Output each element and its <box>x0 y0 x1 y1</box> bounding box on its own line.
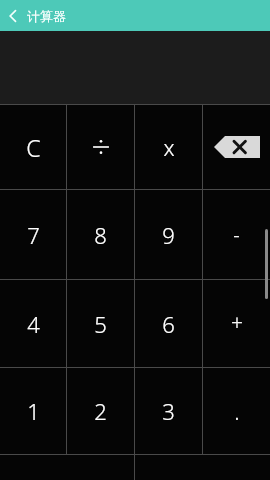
button[interactable]: 9 <box>135 190 202 279</box>
button[interactable]: 2 <box>67 368 134 454</box>
button[interactable]: C <box>0 105 66 189</box>
button[interactable]: x <box>135 105 202 189</box>
staticText: 2 <box>94 396 107 426</box>
staticText: 5 <box>94 309 107 339</box>
other: Back <box>6 9 20 23</box>
staticText: 计算器 <box>27 8 66 24</box>
button[interactable]: 7 <box>0 190 66 279</box>
staticText: 7 <box>27 220 40 250</box>
button[interactable]: Back <box>0 0 76 31</box>
button[interactable]: - <box>203 190 270 279</box>
button[interactable]: 8 <box>67 190 134 279</box>
staticText: . <box>234 396 240 426</box>
button[interactable]: 4 <box>0 280 66 367</box>
button[interactable]: 5 <box>67 280 134 367</box>
staticText: C <box>26 132 41 163</box>
staticText: 9 <box>162 220 175 250</box>
other: Backspace <box>214 136 260 158</box>
staticText: 6 <box>162 309 175 339</box>
staticText: 8 <box>94 220 107 250</box>
staticText: 3 <box>162 396 175 426</box>
staticText: 4 <box>27 309 40 339</box>
staticText: - <box>233 221 240 248</box>
button[interactable]: 3 <box>135 368 202 454</box>
button[interactable]: 1 <box>0 368 66 454</box>
staticText: 1 <box>27 396 40 426</box>
button[interactable]: . <box>203 368 270 454</box>
button[interactable]: 6 <box>135 280 202 367</box>
staticText: x <box>163 132 175 162</box>
button[interactable] <box>67 105 134 189</box>
staticText: + <box>231 309 243 338</box>
button[interactable]: Backspace <box>203 105 270 189</box>
button[interactable]: + <box>203 280 270 367</box>
